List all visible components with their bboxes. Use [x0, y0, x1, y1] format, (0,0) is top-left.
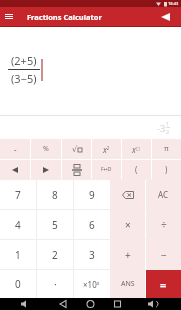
- button[interactable]: [0, 160, 30, 179]
- button[interactable]: x2: [92, 139, 121, 159]
- button[interactable]: ×10x: [74, 270, 109, 298]
- staticText: 1: [15, 248, 21, 262]
- button[interactable]: -: [0, 139, 30, 159]
- staticText: Fractions Calculator: [27, 12, 102, 22]
- staticText: 9: [89, 188, 95, 202]
- staticText: x□: [132, 144, 141, 155]
- button[interactable]: 8: [37, 180, 73, 209]
- button[interactable]: +: [110, 240, 145, 269]
- staticText: −: [161, 248, 167, 262]
- staticText: 2: [52, 248, 58, 262]
- button[interactable]: −: [146, 240, 181, 269]
- button[interactable]: AC: [146, 180, 181, 209]
- staticText: 18:43: [168, 1, 179, 6]
- staticText: =: [160, 277, 167, 292]
- button[interactable]: 1: [0, 240, 36, 269]
- button[interactable]: F↔D: [92, 160, 121, 179]
- staticText: 3: [89, 248, 95, 262]
- staticText: (2+5): [11, 53, 37, 68]
- button[interactable]: 4: [0, 210, 36, 239]
- staticText: (3−5): [11, 71, 37, 86]
- staticText: ×10x: [83, 279, 100, 290]
- staticText: 1: [166, 120, 170, 127]
- staticText: +: [125, 248, 131, 262]
- button[interactable]: x□: [122, 139, 151, 159]
- button[interactable]: ·: [37, 270, 73, 298]
- button[interactable]: =: [146, 270, 181, 298]
- button[interactable]: ): [152, 160, 181, 179]
- staticText: ): [165, 164, 168, 175]
- button[interactable]: ANS: [110, 270, 145, 298]
- staticText: √: [72, 145, 78, 154]
- button[interactable]: √: [62, 139, 91, 159]
- staticText: 4: [15, 218, 21, 232]
- staticText: ÷: [161, 218, 167, 232]
- button[interactable]: 5: [37, 210, 73, 239]
- button[interactable]: [62, 160, 91, 179]
- staticText: ·: [54, 277, 57, 291]
- staticText: -: [14, 144, 17, 155]
- staticText: π: [164, 144, 169, 154]
- button[interactable]: π: [152, 139, 181, 159]
- staticText: (: [135, 164, 138, 175]
- staticText: 0: [15, 277, 21, 291]
- staticText: x2: [103, 144, 110, 155]
- staticText: ×: [125, 218, 131, 232]
- staticText: -3: [157, 122, 166, 134]
- staticText: AC: [158, 189, 169, 200]
- staticText: 6: [89, 218, 95, 232]
- button[interactable]: 6: [74, 210, 109, 239]
- button[interactable]: 9: [74, 180, 109, 209]
- staticText: 2: [166, 128, 170, 135]
- button[interactable]: 3: [74, 240, 109, 269]
- button[interactable]: [5, 14, 13, 19]
- staticText: 5: [52, 218, 58, 232]
- button[interactable]: ×: [110, 210, 145, 239]
- button[interactable]: ÷: [146, 210, 181, 239]
- button[interactable]: 7: [0, 180, 36, 209]
- staticText: ANS: [121, 279, 135, 289]
- button[interactable]: 2: [37, 240, 73, 269]
- button[interactable]: [161, 13, 170, 21]
- staticText: 8: [52, 188, 58, 202]
- staticText: %: [43, 144, 49, 154]
- button[interactable]: 0: [0, 270, 36, 298]
- button[interactable]: [110, 180, 145, 209]
- staticText: 7: [15, 188, 21, 202]
- button[interactable]: (: [122, 160, 151, 179]
- button[interactable]: %: [31, 139, 61, 159]
- button[interactable]: [31, 160, 61, 179]
- staticText: F↔D: [101, 166, 112, 173]
